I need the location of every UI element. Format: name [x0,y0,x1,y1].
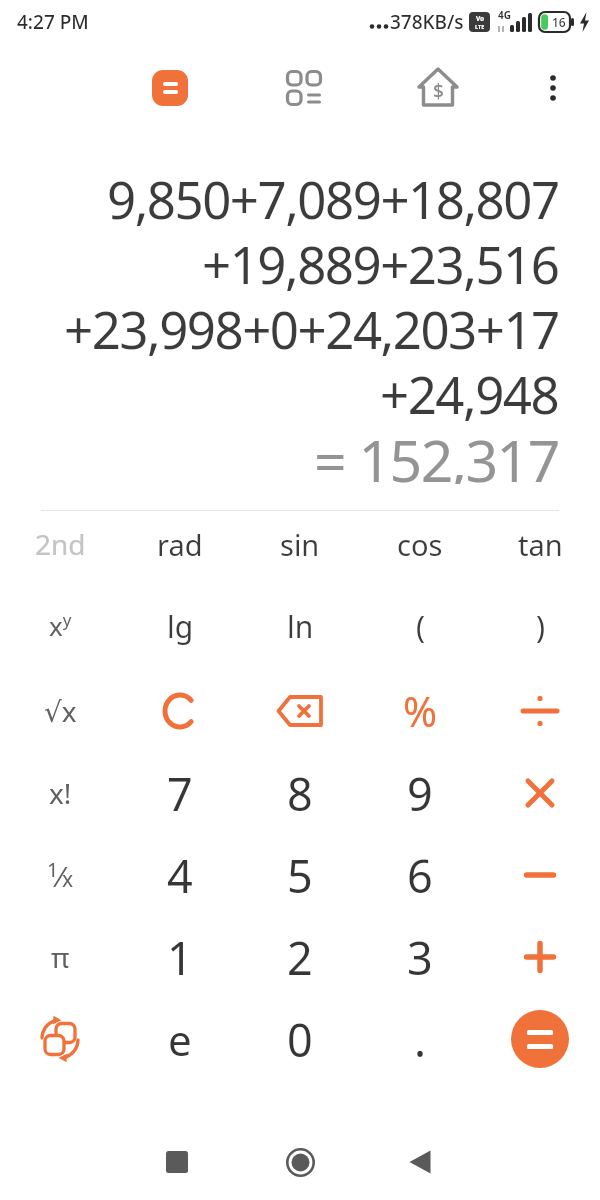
button[interactable]: 9 [360,752,480,834]
staticText: Vo [476,14,485,23]
staticText: 6 [407,845,433,906]
button[interactable]: 6 [360,834,480,916]
button[interactable]: % [360,670,480,752]
staticText: 2nd [35,525,86,563]
button[interactable] [480,834,600,916]
staticText: ( [416,606,425,647]
button[interactable] [537,72,569,104]
button[interactable]: ln [240,582,360,670]
staticText: +19,889+23,516 [202,229,559,294]
button[interactable] [152,70,188,106]
button[interactable]: π [0,916,120,998]
button[interactable]: 8 [240,752,360,834]
button[interactable]: 3 [360,916,480,998]
button[interactable]: 7 [120,752,240,834]
staticText: +23,998+0+24,203+17 [64,294,559,359]
staticText: 1 [167,927,193,988]
button[interactable]: ) [480,582,600,670]
button[interactable] [480,916,600,998]
staticText: +24,948 [380,359,559,424]
staticText: ln [287,606,314,647]
button[interactable] [480,752,600,834]
button[interactable] [155,1140,199,1184]
staticText: π [51,938,70,976]
staticText: e [168,1011,192,1068]
button[interactable] [480,998,600,1080]
button[interactable]: 2 [240,916,360,998]
staticText: cos [397,525,443,564]
staticText: LTE [475,23,485,30]
button[interactable] [240,670,360,752]
staticText: = 152,317 [314,421,559,484]
button[interactable]: xy [0,582,120,670]
staticText: √x [44,692,77,730]
staticText: xy [49,608,72,644]
staticText: 7 [167,763,193,824]
staticText: . [414,1009,427,1070]
staticText: 4:27 PM [17,9,89,35]
staticText: 9 [407,763,433,824]
staticText: 0 [287,1009,313,1070]
button[interactable]: ( [360,582,480,670]
staticText: 4G [498,8,511,22]
staticText: lg [167,606,194,647]
button[interactable]: 4 [120,834,240,916]
staticText: ) [536,606,545,647]
button[interactable]: 5 [240,834,360,916]
button[interactable]: tan [480,506,600,582]
staticText: $ [433,78,444,104]
button[interactable]: lg [120,582,240,670]
button[interactable]: 1 [120,916,240,998]
staticText: 1⁄x [47,856,74,895]
staticText: 2 [287,927,313,988]
button[interactable] [0,998,120,1080]
staticText: rad [157,525,203,564]
button[interactable]: sin [240,506,360,582]
staticText: 3 [407,927,433,988]
button[interactable] [398,1140,442,1184]
staticText: 16 [552,14,566,30]
staticText: tan [518,525,563,564]
button[interactable]: 1⁄x [0,834,120,916]
button[interactable]: e [120,998,240,1080]
staticText: 378KB/s [390,9,464,35]
button[interactable]: 0 [240,998,360,1080]
button[interactable]: cos [360,506,480,582]
button[interactable]: rad [120,506,240,582]
staticText: 4 [167,845,193,906]
button[interactable]: √x [0,670,120,752]
button[interactable]: . [360,998,480,1080]
button[interactable] [480,670,600,752]
staticText: 5 [287,845,313,906]
button[interactable] [284,68,324,108]
button[interactable]: 2nd [0,506,120,582]
staticText: 9,850+7,089+18,807 [107,164,559,229]
staticText: x! [49,774,72,812]
staticText: sin [280,525,320,564]
button[interactable] [120,670,240,752]
button[interactable] [278,1140,322,1184]
staticText: % [403,683,438,739]
button[interactable]: x! [0,752,120,834]
button[interactable]: $ [416,66,460,110]
staticText: 8 [287,763,313,824]
